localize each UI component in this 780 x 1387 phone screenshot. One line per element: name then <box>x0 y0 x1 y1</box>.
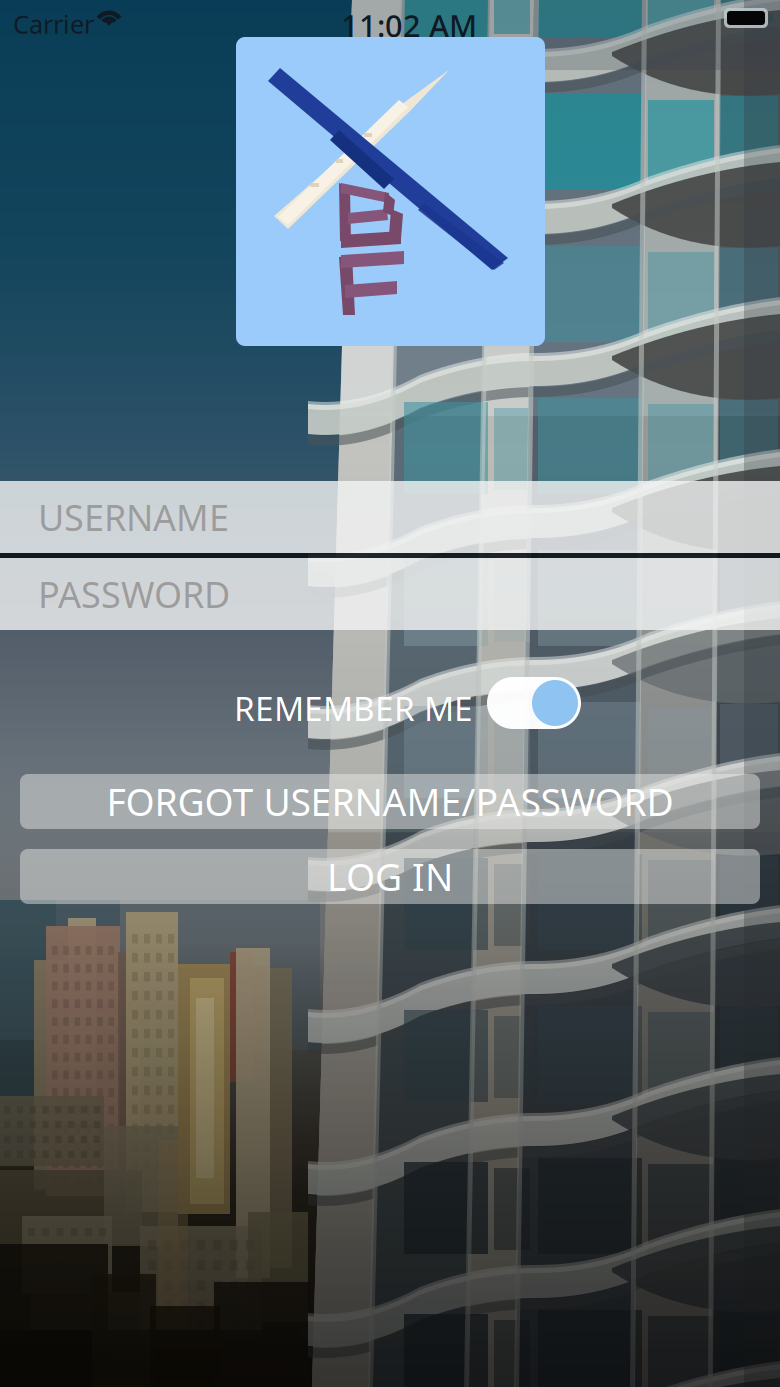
staticText: Carrier <box>13 7 94 41</box>
staticText: 11:02 AM <box>341 5 477 46</box>
staticText: REMEMBER ME <box>234 686 473 730</box>
button[interactable]: PASSWORD <box>0 558 780 630</box>
staticText: FORGOT USERNAME/PASSWORD <box>106 777 673 826</box>
button[interactable]: FORGOT USERNAME/PASSWORD <box>20 774 760 829</box>
button[interactable]: USERNAME <box>0 481 780 553</box>
staticText: PASSWORD <box>38 570 230 618</box>
button[interactable]: LOG IN <box>20 849 760 904</box>
staticText: LOG IN <box>327 852 453 901</box>
staticText: USERNAME <box>38 493 229 541</box>
button[interactable]: Remember me <box>487 677 581 729</box>
